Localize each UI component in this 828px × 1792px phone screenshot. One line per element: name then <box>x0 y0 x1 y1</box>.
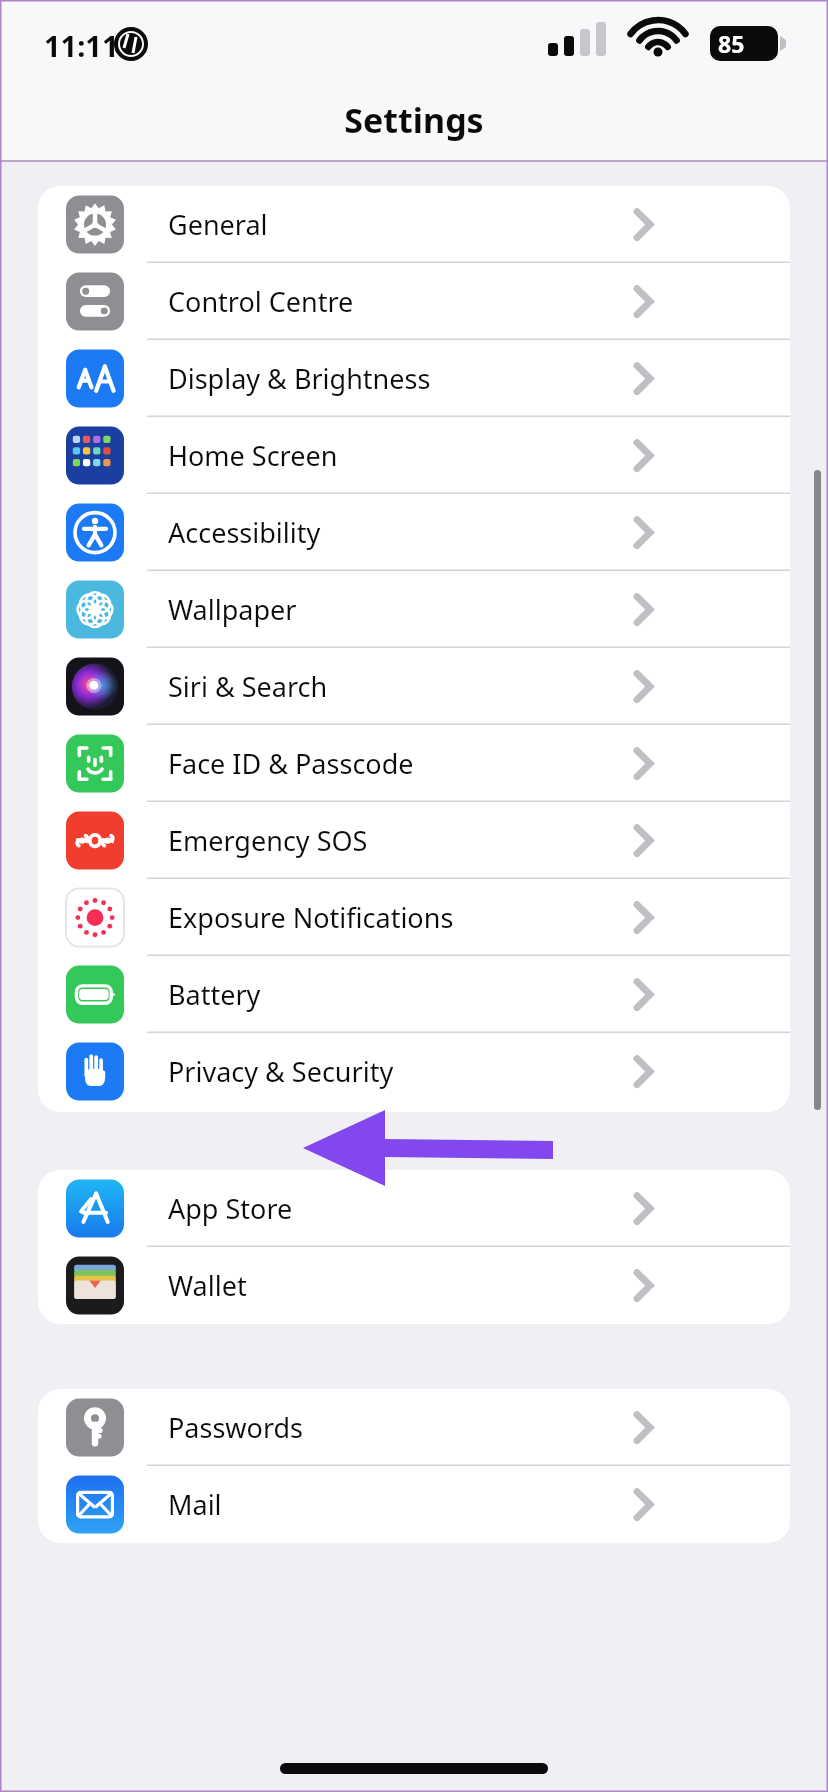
staticText: Display & Brightness <box>168 360 431 397</box>
staticText: Wallet <box>168 1267 247 1304</box>
button[interactable]: Face ID & Passcode <box>38 725 790 802</box>
staticText: 85 <box>718 28 745 59</box>
button[interactable]: Display & Brightness <box>38 340 790 417</box>
staticText: Privacy & Security <box>168 1053 394 1090</box>
staticText: Passwords <box>168 1409 304 1446</box>
staticText: Control Centre <box>168 283 354 320</box>
button[interactable]: Emergency SOS <box>38 802 790 879</box>
staticText: Exposure Notifications <box>168 899 454 936</box>
button[interactable]: Home Screen <box>38 417 790 494</box>
staticText: App Store <box>168 1190 293 1227</box>
button[interactable]: Battery <box>38 956 790 1033</box>
staticText: Wallpaper <box>168 591 297 628</box>
staticText: General <box>168 206 268 243</box>
staticText: Face ID & Passcode <box>168 745 414 782</box>
button[interactable]: Wallet <box>38 1247 790 1324</box>
staticText: 11:11 <box>44 26 119 65</box>
staticText: Emergency SOS <box>168 822 368 859</box>
staticText: Accessibility <box>168 514 321 551</box>
button[interactable]: Siri & Search <box>38 648 790 725</box>
button[interactable]: App Store <box>38 1170 790 1247</box>
staticText: Home Screen <box>168 437 338 474</box>
button[interactable]: Exposure Notifications <box>38 879 790 956</box>
button[interactable]: Mail <box>38 1466 790 1543</box>
button[interactable]: Control Centre <box>38 263 790 340</box>
button[interactable]: Accessibility <box>38 494 790 571</box>
staticText: Settings <box>0 97 828 143</box>
staticText: Mail <box>168 1486 222 1523</box>
staticText: Siri & Search <box>168 668 328 705</box>
button[interactable]: Wallpaper <box>38 571 790 648</box>
button[interactable]: Passwords <box>38 1389 790 1466</box>
button[interactable]: Privacy & Security <box>38 1033 790 1110</box>
button[interactable]: General <box>38 186 790 263</box>
staticText: Battery <box>168 976 261 1013</box>
